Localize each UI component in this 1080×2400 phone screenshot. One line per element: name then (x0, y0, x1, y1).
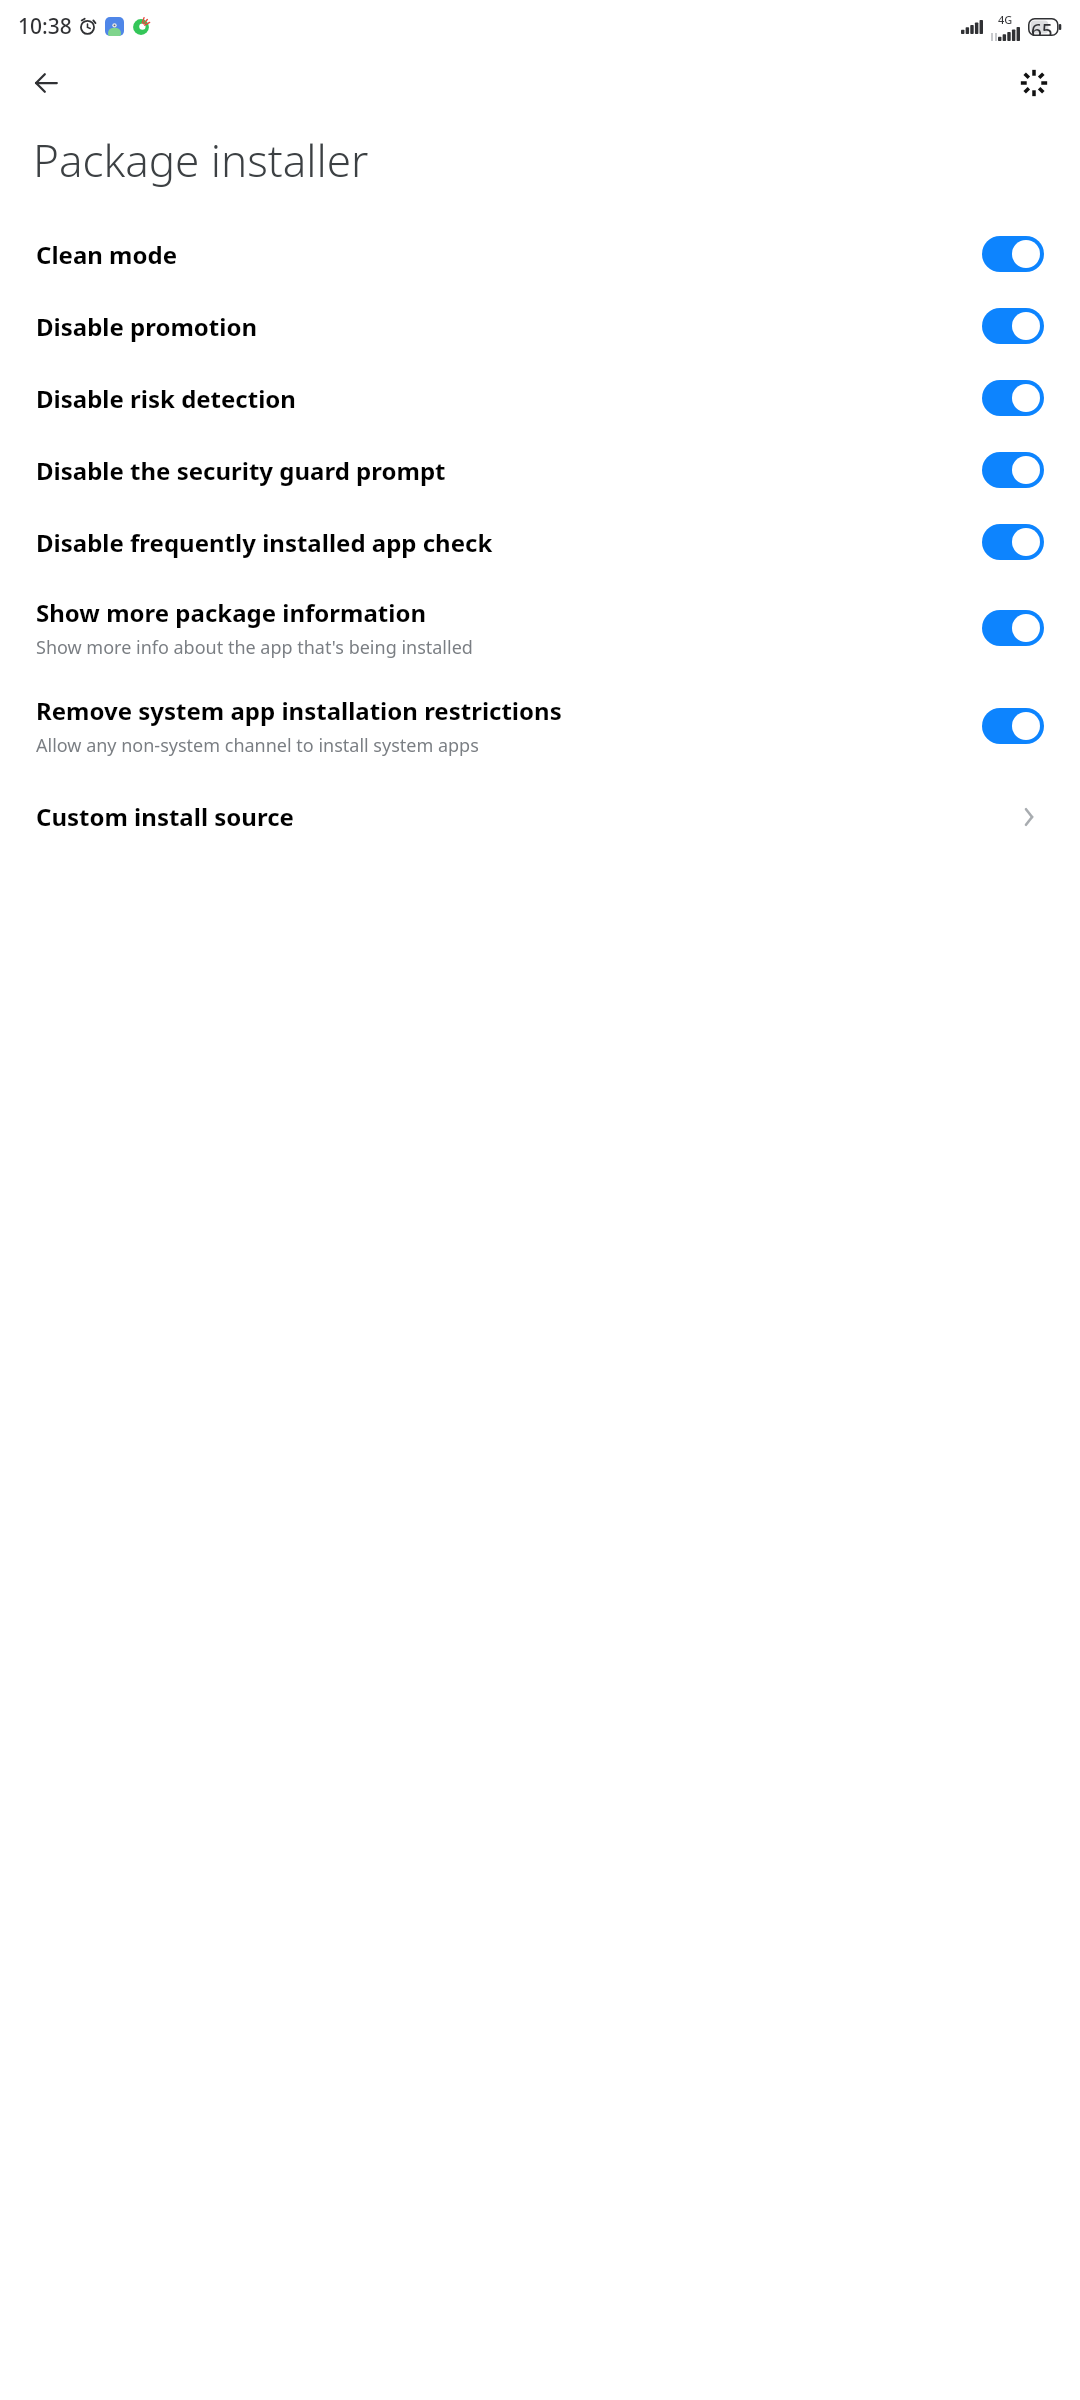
button[interactable]: Toggle on (982, 610, 1044, 646)
staticText: Show more package information (36, 596, 427, 629)
staticText: 65 (1031, 18, 1053, 36)
button[interactable]: Back (24, 61, 68, 105)
other: Open (1014, 802, 1044, 832)
staticText: Disable the security guard prompt (36, 454, 446, 487)
button[interactable]: Disable the security guard prompt (0, 428, 1080, 500)
button[interactable]: Loading (1012, 61, 1056, 105)
staticText: 4G (998, 12, 1013, 27)
staticText: Remove system app installation restricti… (36, 694, 562, 727)
staticText: 10:38 (18, 12, 72, 41)
button[interactable]: Toggle on (982, 380, 1044, 416)
button[interactable]: Toggle on (982, 708, 1044, 744)
button[interactable]: Disable risk detection (0, 356, 1080, 428)
staticText: Package installer (33, 130, 369, 190)
button[interactable]: Toggle on (982, 452, 1044, 488)
button[interactable]: Remove system app installation restricti… (0, 672, 1080, 770)
button[interactable]: Custom install source (0, 770, 1080, 845)
button[interactable]: Toggle on (982, 236, 1044, 272)
staticText: Disable promotion (36, 310, 258, 343)
button[interactable]: Show more package information (0, 572, 1080, 672)
button[interactable]: Disable promotion (0, 284, 1080, 356)
staticText: Disable frequently installed app check (36, 526, 493, 559)
staticText: Custom install source (36, 800, 294, 833)
button[interactable]: Disable frequently installed app check (0, 500, 1080, 572)
button[interactable]: Toggle on (982, 308, 1044, 344)
staticText: Disable risk detection (36, 382, 296, 415)
button[interactable]: Toggle on (982, 524, 1044, 560)
staticText: Show more info about the app that's bein… (36, 635, 473, 660)
staticText: Clean mode (36, 238, 177, 271)
button[interactable]: Clean mode (0, 224, 1080, 284)
staticText: Allow any non-system channel to install … (36, 733, 479, 758)
